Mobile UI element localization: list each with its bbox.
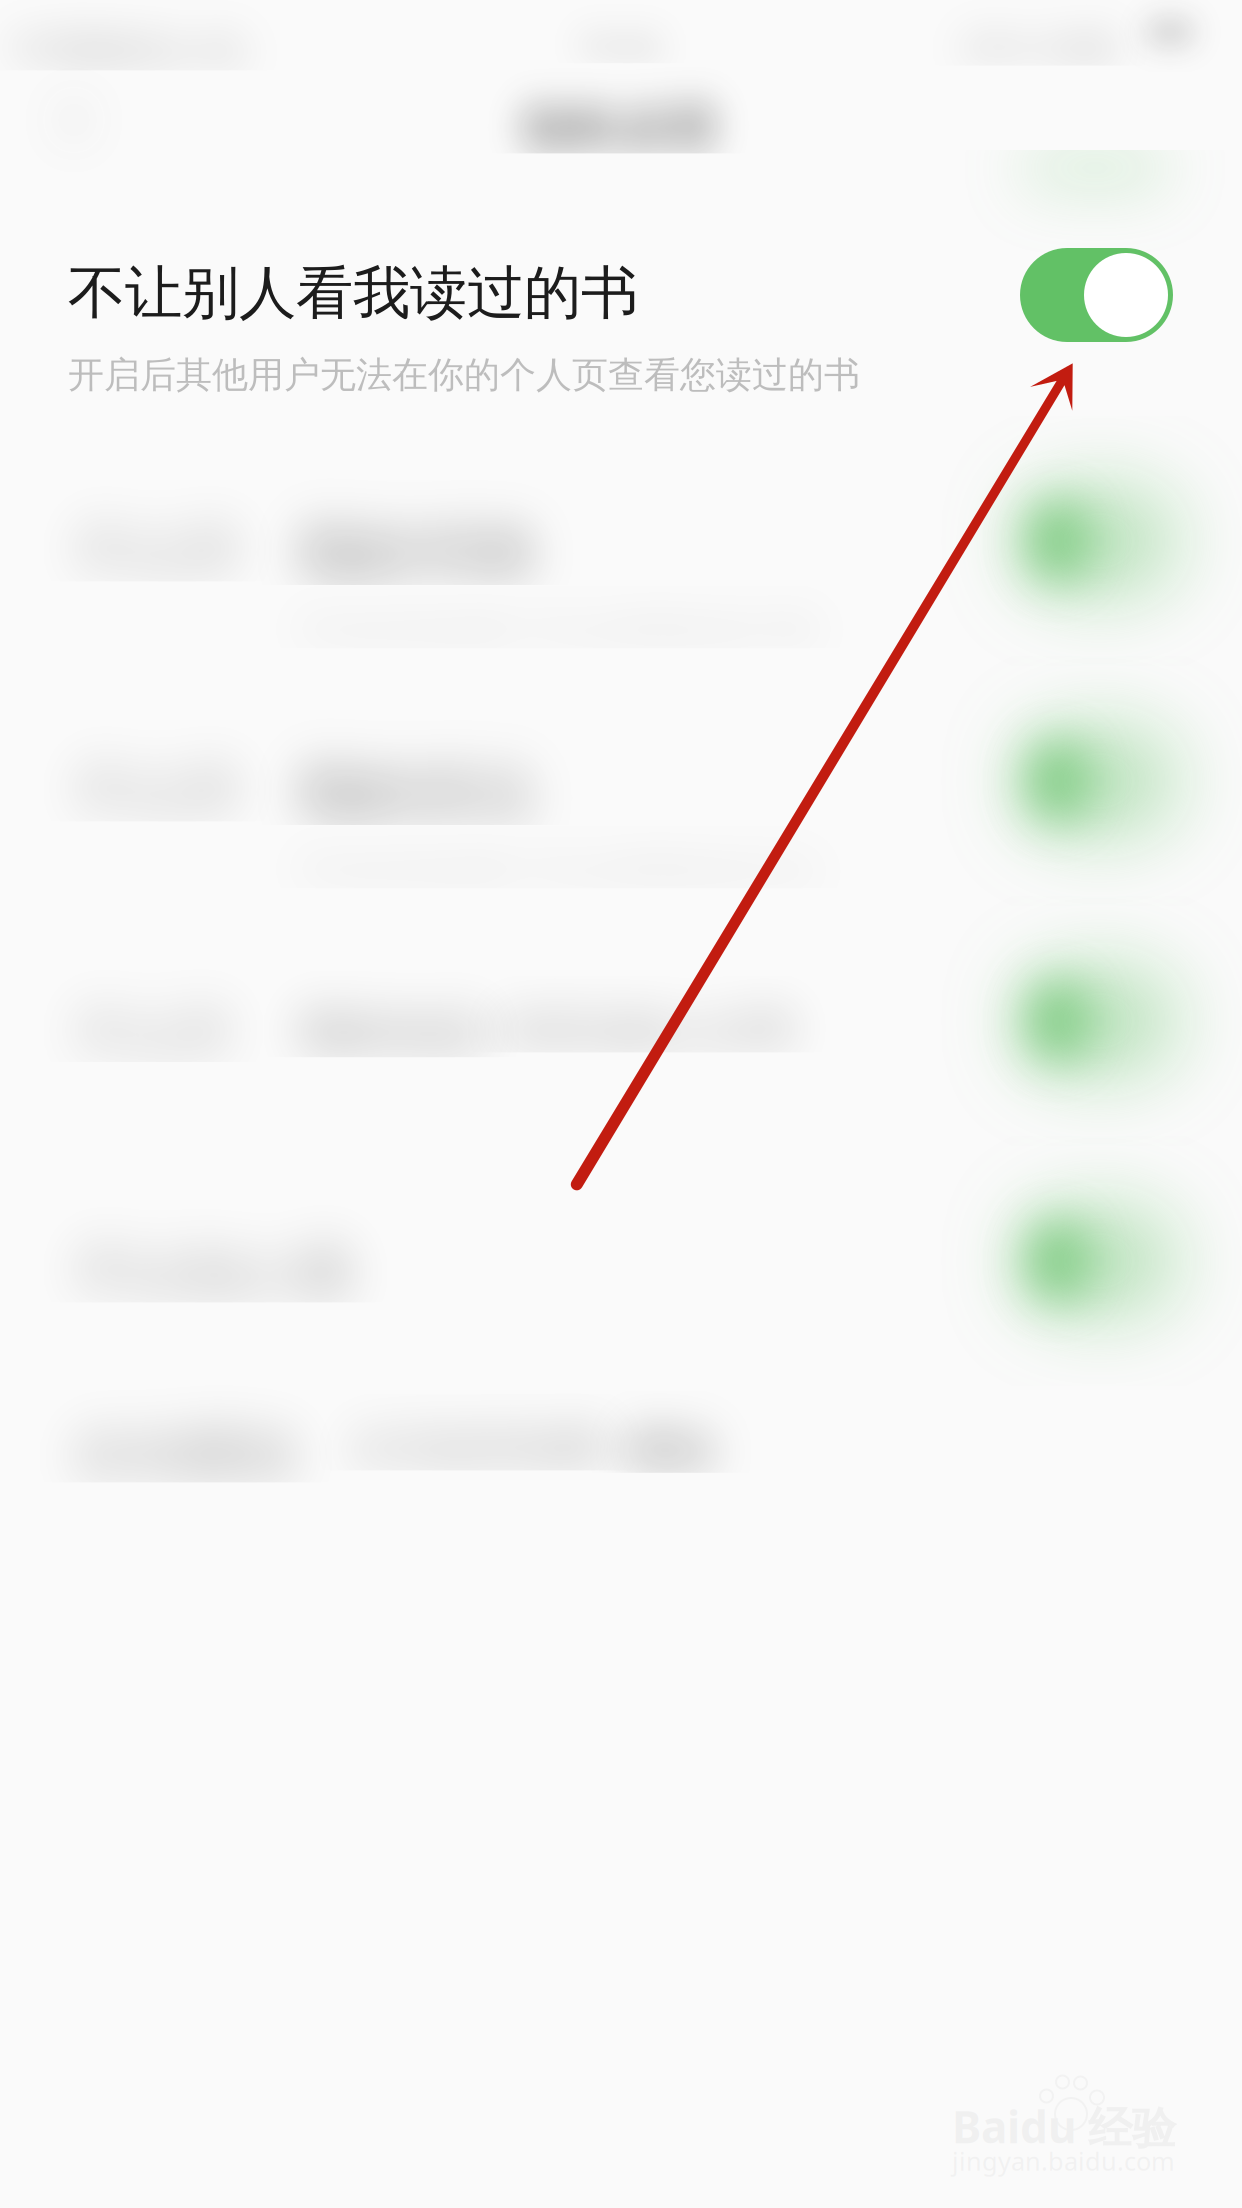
staticText: 自动播放 — [74, 1227, 298, 1296]
staticText: 我的书单 — [297, 318, 537, 391]
staticText: 我的关注 — [297, 558, 537, 631]
button[interactable]: 不让别人看我读过的书 — [1020, 248, 1173, 342]
staticText: 与关注的人分享 — [495, 840, 796, 892]
staticText: 不让别人看我读过的书 — [68, 258, 638, 328]
staticText: 开启后其他用户无法在你的个人页查看您读过的书 — [68, 353, 860, 397]
staticText: 不公开 — [74, 566, 242, 635]
staticText: jingyan.baidu.com — [952, 2144, 1175, 2178]
staticText: 不公开 — [74, 326, 242, 395]
staticText: Baidu 经验 — [952, 2097, 1176, 2156]
staticText: 不让别人看 — [74, 1047, 354, 1116]
